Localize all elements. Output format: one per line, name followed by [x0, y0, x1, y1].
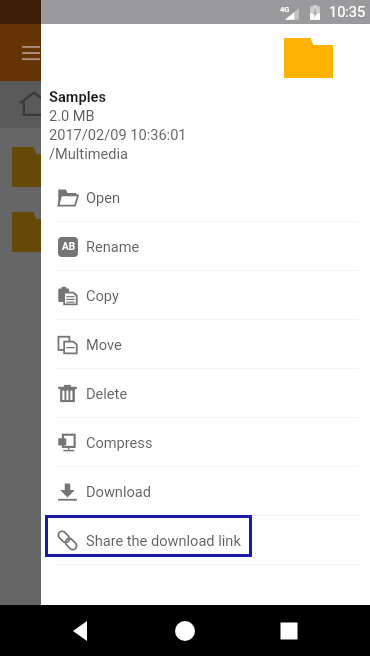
staticText: Compress — [86, 434, 153, 451]
staticText: Download — [86, 483, 151, 500]
staticText: Delete — [86, 385, 128, 402]
button[interactable]: Download — [41, 467, 369, 516]
staticText: 4G — [280, 5, 290, 14]
button[interactable]: Share the download link — [41, 516, 369, 565]
button[interactable]: Open — [41, 173, 369, 222]
staticText: Rename — [86, 238, 140, 255]
staticText: /Multimedia — [49, 145, 128, 162]
button[interactable]: Back — [58, 608, 104, 654]
staticText: Share the download link — [86, 532, 241, 549]
button[interactable]: Recents — [266, 608, 312, 654]
button[interactable]: Delete — [41, 369, 369, 418]
staticText: 10:35 — [329, 4, 366, 21]
staticText: 2.0 MB — [49, 107, 95, 124]
staticText: Copy — [86, 287, 119, 304]
staticText: Samples — [49, 88, 106, 105]
button[interactable]: Move — [41, 320, 369, 369]
button[interactable]: Home — [162, 608, 208, 654]
staticText: AB — [62, 241, 75, 253]
button[interactable]: AB — [41, 222, 369, 271]
button[interactable]: Copy — [41, 271, 369, 320]
staticText: 2017/02/09 10:36:01 — [49, 126, 187, 143]
staticText: Open — [86, 189, 121, 206]
button[interactable]: Compress — [41, 418, 369, 467]
staticText: Move — [86, 336, 122, 353]
